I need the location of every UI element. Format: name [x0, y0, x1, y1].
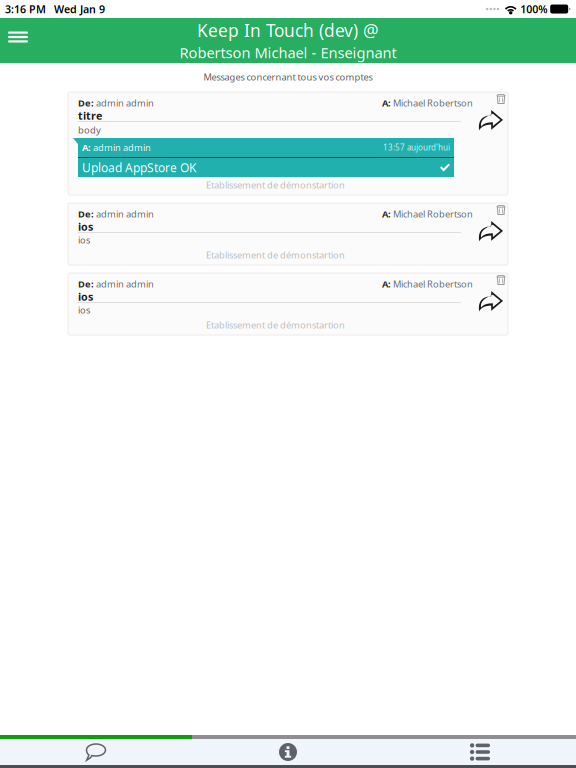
button[interactable]: Delete: [490, 92, 507, 108]
button[interactable]: Delete: [490, 273, 507, 289]
staticText: Etablissement de démonstartion: [206, 319, 345, 331]
staticText: Michael Robertson: [393, 208, 473, 220]
staticText: Michael Robertson: [393, 278, 473, 290]
staticText: body: [78, 124, 101, 136]
button[interactable]: Menu: [0, 18, 38, 63]
staticText: ios: [78, 219, 93, 234]
staticText: De:: [78, 278, 96, 290]
staticText: De:: [78, 97, 96, 109]
staticText: 100%: [520, 2, 547, 16]
staticText: A:: [382, 97, 393, 109]
button[interactable]: Forward: [474, 289, 507, 312]
staticText: admin admin: [96, 208, 154, 220]
staticText: Upload AppStore OK: [82, 159, 196, 175]
button[interactable]: Forward: [474, 108, 507, 131]
staticText: A:: [82, 141, 93, 154]
staticText: Messages concernant tous vos comptes: [203, 71, 372, 83]
staticText: Wed Jan 9: [54, 2, 105, 16]
staticText: 3:16 PM: [5, 2, 46, 16]
staticText: Etablissement de démonstartion: [206, 179, 345, 191]
staticText: De:: [78, 208, 96, 220]
staticText: Etablissement de démonstartion: [206, 249, 345, 261]
staticText: Keep In Touch (dev) @: [197, 19, 379, 42]
button[interactable]: Messages: [0, 739, 192, 765]
staticText: ios: [78, 304, 90, 316]
staticText: Michael Robertson: [393, 97, 473, 109]
staticText: admin admin: [96, 97, 154, 109]
staticText: ios: [78, 234, 90, 246]
staticText: ios: [78, 289, 93, 304]
button[interactable]: Information: [192, 739, 384, 765]
button[interactable]: De:: [68, 92, 508, 195]
button[interactable]: De:: [68, 203, 508, 265]
button[interactable]: List: [384, 739, 576, 765]
staticText: admin admin: [96, 278, 154, 290]
button[interactable]: De:: [68, 273, 508, 335]
staticText: A:: [382, 208, 393, 220]
staticText: 13:57 aujourd'hui: [383, 142, 450, 153]
staticText: Robertson Michael - Enseignant: [179, 43, 396, 62]
staticText: admin admin: [93, 141, 151, 154]
staticText: A:: [382, 278, 393, 290]
button[interactable]: Forward: [474, 219, 507, 242]
staticText: titre: [78, 108, 102, 123]
button[interactable]: Delete: [490, 203, 507, 219]
